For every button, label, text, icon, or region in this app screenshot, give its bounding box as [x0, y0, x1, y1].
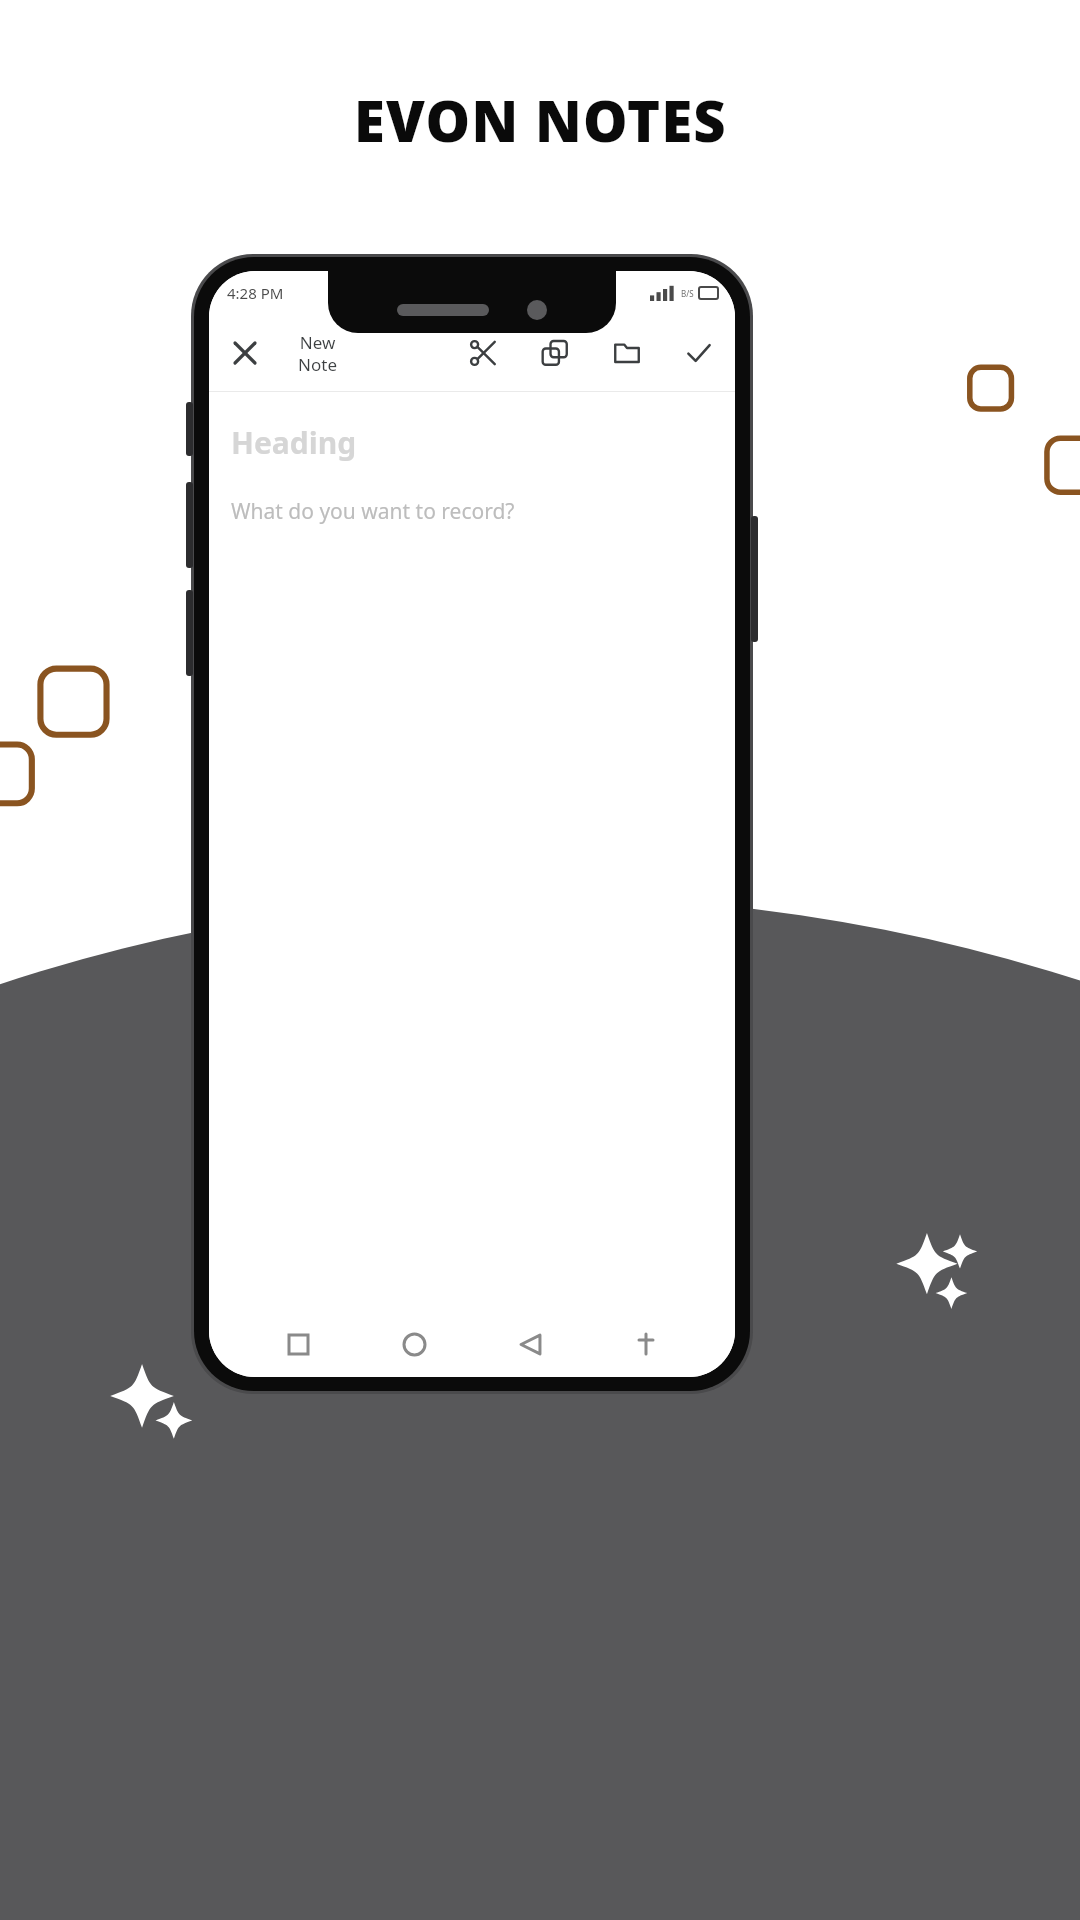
button[interactable]: New Note — [271, 331, 363, 376]
button[interactable]: Copy — [529, 327, 581, 379]
button[interactable]: Recents — [271, 1317, 325, 1371]
staticText: B/S — [681, 288, 694, 299]
button[interactable]: Back — [503, 1317, 557, 1371]
button[interactable]: Cut — [457, 327, 509, 379]
staticText: Heading — [231, 422, 357, 463]
button[interactable]: Save — [673, 327, 725, 379]
staticText: What do you want to record? — [231, 497, 515, 526]
button[interactable]: Close — [219, 327, 271, 379]
button[interactable]: Keyboard — [619, 1317, 673, 1371]
staticText: New Note — [298, 331, 337, 376]
staticText: 4:28 PM — [227, 283, 284, 303]
staticText: EVON NOTES — [354, 82, 727, 158]
button[interactable]: Heading — [231, 422, 713, 463]
button[interactable]: Home — [387, 1317, 441, 1371]
button[interactable]: What do you want to record? — [231, 497, 713, 526]
button[interactable]: Folder — [601, 327, 653, 379]
